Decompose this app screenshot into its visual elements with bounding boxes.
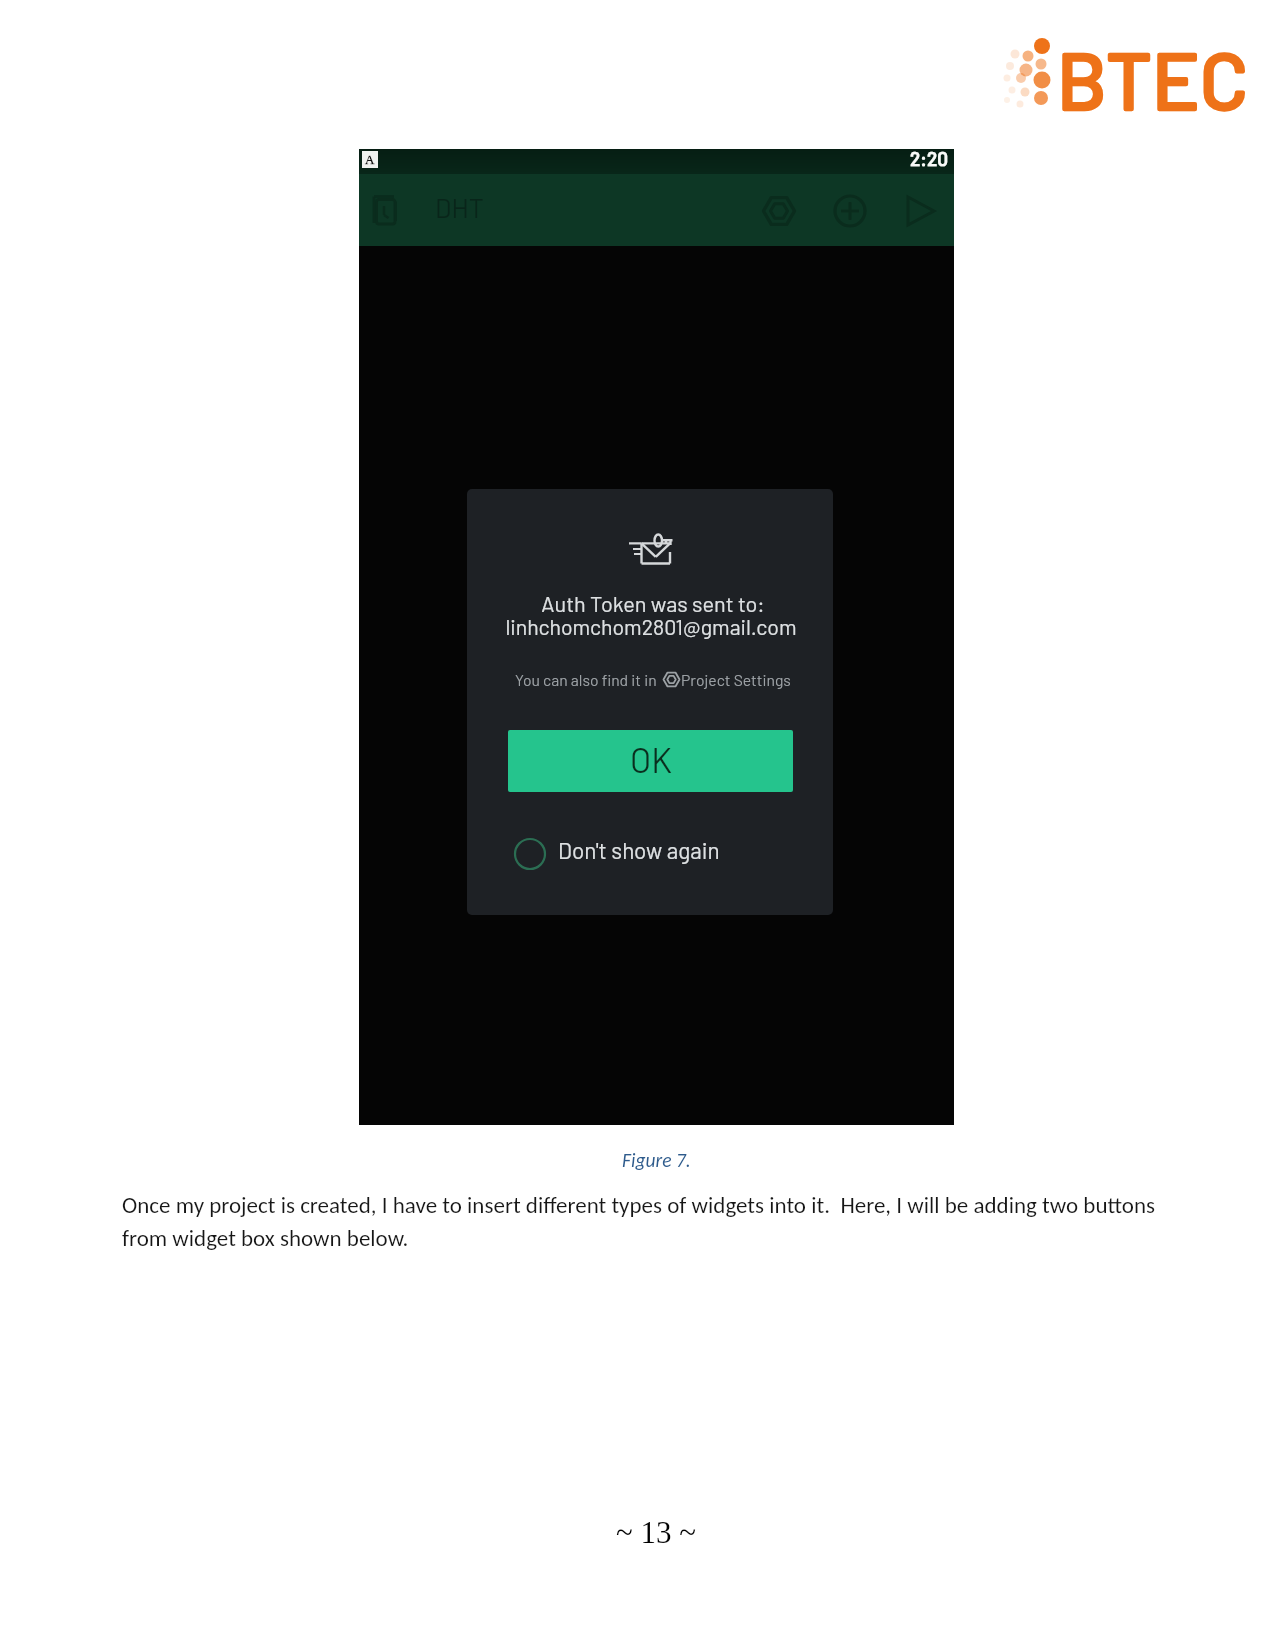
button[interactable]: Project Settings bbox=[662, 670, 791, 689]
button[interactable]: Add bbox=[826, 187, 874, 235]
staticText: Project Settings bbox=[681, 670, 791, 689]
button[interactable]: Projects bbox=[367, 193, 409, 235]
button[interactable]: Run bbox=[886, 187, 934, 235]
staticText: Once my project is created, I have to in… bbox=[122, 1191, 1164, 1252]
staticText: A bbox=[365, 152, 375, 166]
button[interactable]: Settings bbox=[755, 187, 803, 235]
staticText: You can also find it in bbox=[515, 670, 657, 689]
staticText: OK bbox=[630, 739, 672, 780]
staticText: Auth Token was sent to: bbox=[541, 590, 765, 616]
staticText: ~ 13 ~ bbox=[616, 1515, 697, 1549]
staticText: BTEC bbox=[1057, 30, 1249, 126]
button[interactable]: Don't show again bbox=[514, 827, 774, 871]
staticText: 2:20 bbox=[910, 147, 949, 170]
button[interactable]: OK bbox=[508, 730, 793, 792]
staticText: DHT bbox=[435, 191, 484, 223]
staticText: linhchomchom2801@gmail.com bbox=[505, 614, 797, 640]
staticText: Figure 7. bbox=[622, 1148, 691, 1172]
staticText: Don't show again bbox=[558, 836, 720, 863]
